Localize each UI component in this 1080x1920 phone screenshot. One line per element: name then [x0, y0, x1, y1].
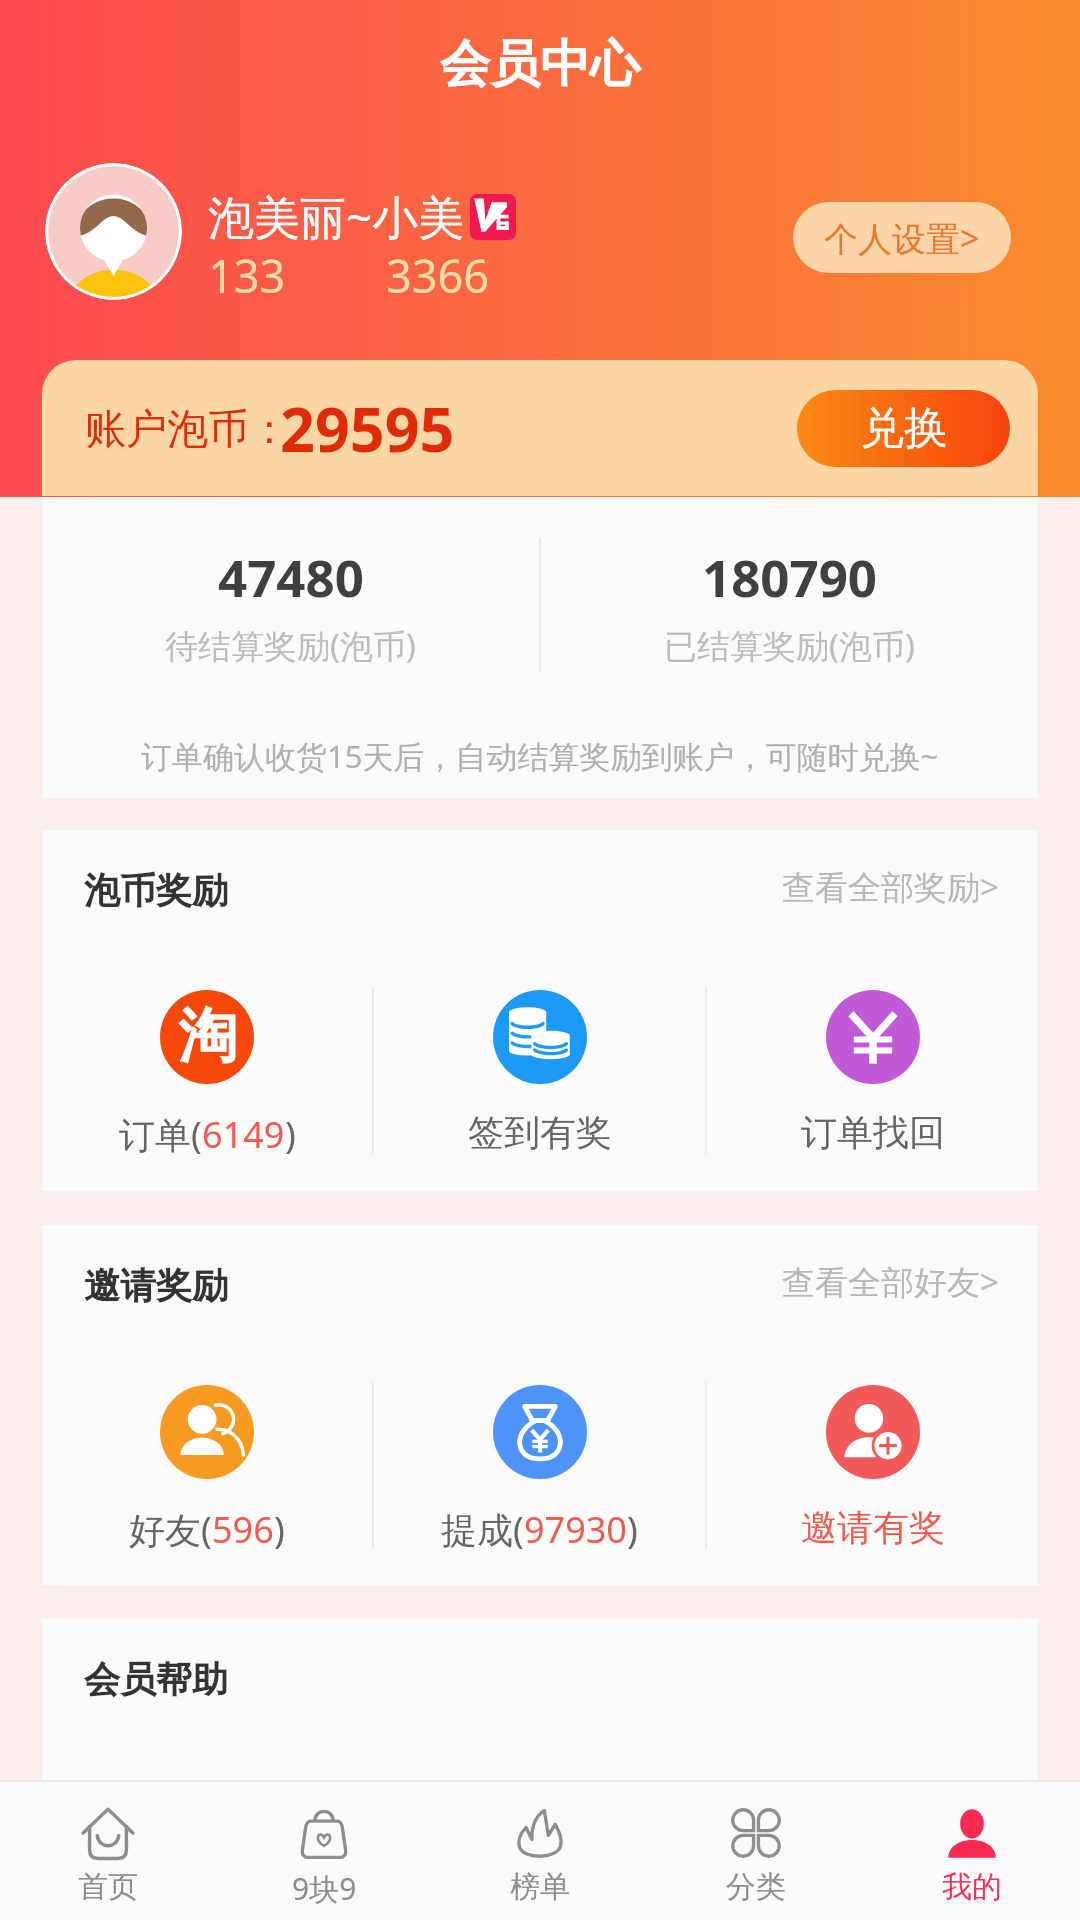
- button[interactable]: 兑换: [797, 390, 1010, 467]
- staticText: 邀请奖励: [84, 1263, 228, 1308]
- staticText: 会员中心: [440, 33, 640, 96]
- staticText: 个人设置>: [824, 215, 980, 261]
- button[interactable]: 查看全部奖励>: [782, 864, 999, 909]
- staticText: 提成(: [441, 1505, 524, 1554]
- button[interactable]: 签到有奖: [374, 987, 705, 1155]
- button[interactable]: 淘: [42, 987, 372, 1159]
- staticText: 我的: [942, 1868, 1002, 1906]
- staticText: 3366: [386, 245, 489, 306]
- staticText: 榜单: [510, 1868, 570, 1906]
- button[interactable]: 订单找回: [707, 987, 1038, 1155]
- staticText: ): [627, 1505, 638, 1554]
- button[interactable]: Profile avatar: [45, 163, 182, 300]
- staticText: 泡美丽~小美: [208, 185, 465, 248]
- button[interactable]: 个人设置>: [793, 202, 1011, 273]
- staticText: 9块9: [292, 1868, 357, 1909]
- staticText: 泡币奖励: [84, 868, 228, 913]
- staticText: ): [274, 1505, 285, 1554]
- staticText: 好友(: [129, 1505, 212, 1554]
- staticText: 订单(: [119, 1110, 202, 1159]
- staticText: 账户泡币：: [85, 404, 290, 456]
- staticText: ): [285, 1110, 296, 1159]
- button[interactable]: 好友(: [42, 1382, 372, 1554]
- staticText: 分类: [726, 1868, 786, 1906]
- button[interactable]: Home: [0, 1780, 216, 1920]
- staticText: 会员帮助: [84, 1657, 228, 1702]
- staticText: 兑换: [860, 401, 948, 456]
- button[interactable]: Rankings: [432, 1780, 648, 1920]
- button[interactable]: Categories: [648, 1780, 864, 1920]
- staticText: 查看全部奖励>: [782, 864, 999, 909]
- button[interactable]: Profile: [864, 1780, 1080, 1920]
- staticText: 133: [208, 245, 286, 306]
- staticText: 订单确认收货15天后，自动结算奖励到账户，可随时兑换~: [141, 735, 939, 777]
- staticText: 订单找回: [801, 1110, 945, 1155]
- staticText: 180790: [702, 542, 878, 611]
- staticText: 首页: [78, 1868, 138, 1906]
- staticText: 97930: [524, 1505, 627, 1554]
- staticText: 淘: [178, 999, 237, 1073]
- button[interactable]: 查看全部好友>: [782, 1259, 999, 1304]
- staticText: 查看全部好友>: [782, 1259, 999, 1304]
- staticText: 邀请有奖: [801, 1505, 945, 1550]
- button[interactable]: 邀请有奖: [707, 1382, 1038, 1550]
- button[interactable]: 账户泡币：: [42, 360, 1038, 496]
- button[interactable]: Deals: [216, 1780, 432, 1920]
- staticText: 596: [212, 1505, 274, 1554]
- staticText: 签到有奖: [468, 1110, 612, 1155]
- staticText: 已结算奖励(泡币): [664, 623, 915, 668]
- staticText: 待结算奖励(泡币): [165, 623, 416, 668]
- staticText: 47480: [218, 542, 364, 611]
- button[interactable]: 会员帮助: [42, 1619, 1038, 1780]
- button[interactable]: 提成(: [374, 1382, 705, 1554]
- staticText: 6149: [202, 1110, 285, 1159]
- staticText: 29595: [280, 387, 455, 470]
